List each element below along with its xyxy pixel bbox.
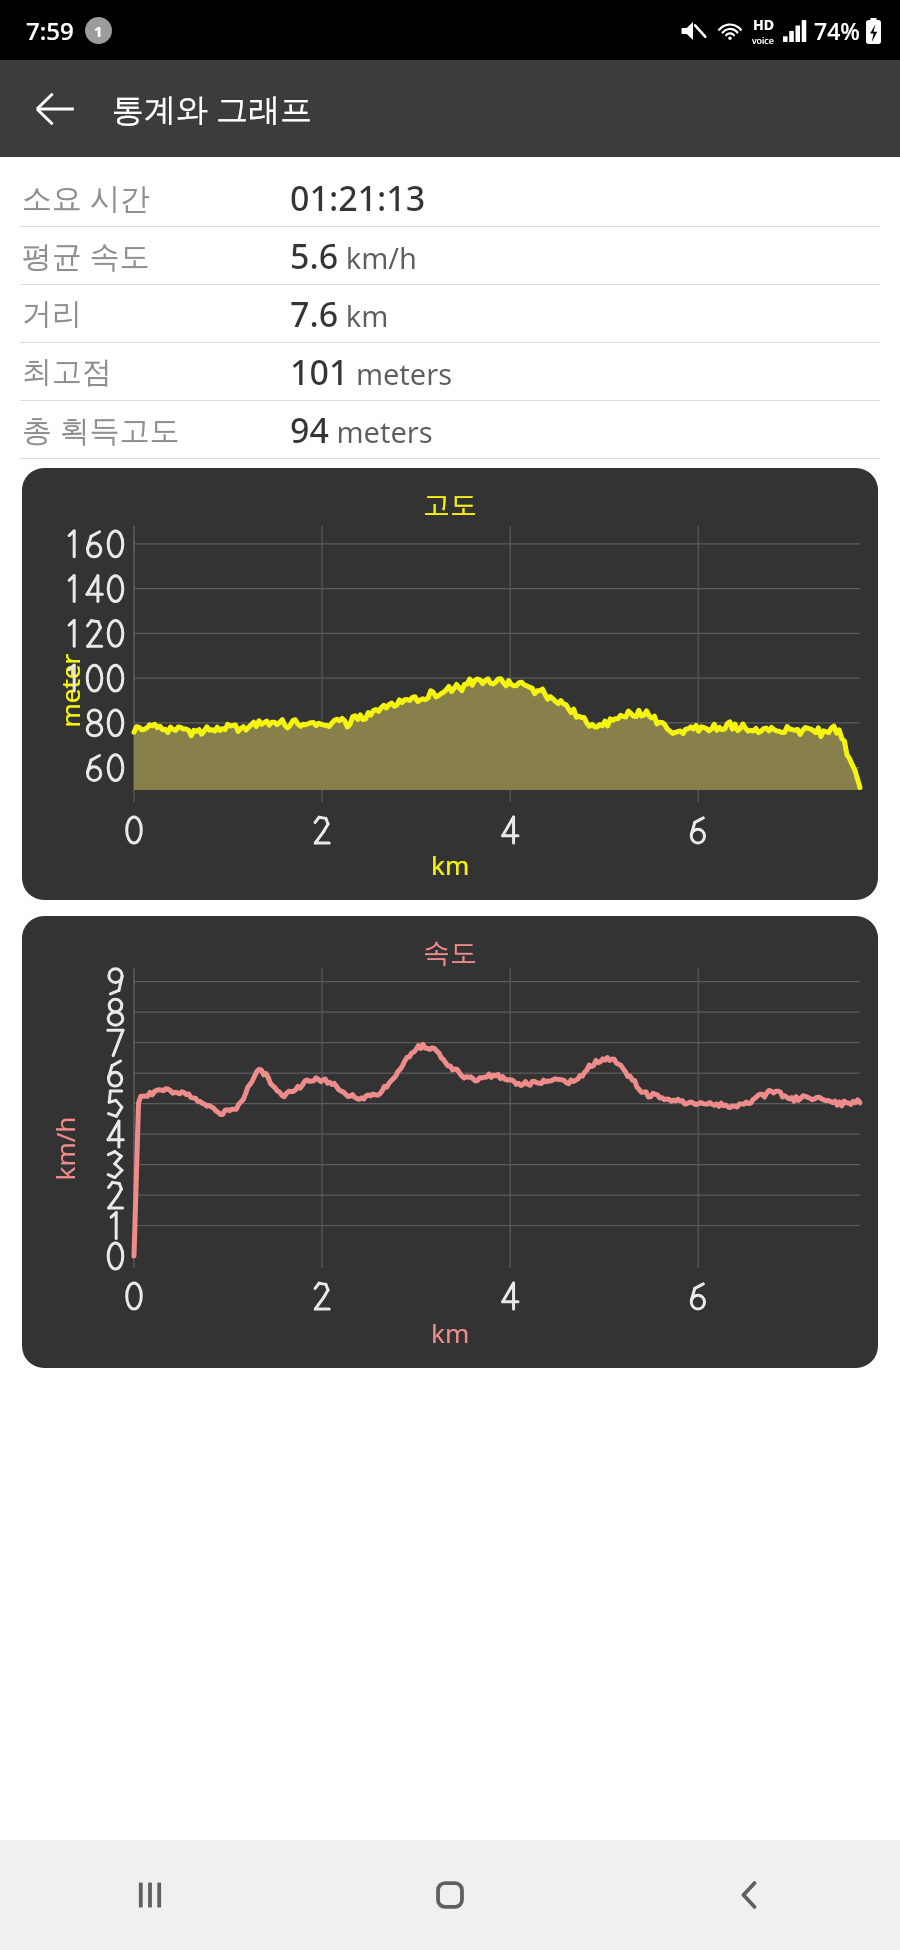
staticText: 고도 (423, 488, 477, 522)
staticText: 1 (94, 21, 103, 41)
button[interactable]: 평균 속도 (0, 227, 900, 284)
staticText: 7:59 (26, 14, 74, 47)
staticText: 101 meters (290, 349, 453, 395)
staticText: 74% (814, 15, 860, 46)
button[interactable]: Recents (0, 1840, 300, 1950)
button[interactable]: Back (600, 1840, 900, 1950)
staticText: HD (753, 15, 774, 34)
button[interactable]: Home (300, 1840, 600, 1950)
staticText: 속도 (423, 936, 477, 970)
staticText: 평균 속도 (22, 235, 150, 276)
staticText: 거리 (22, 295, 82, 333)
staticText: km/h (46, 1116, 81, 1180)
button[interactable]: Back (18, 72, 92, 146)
button[interactable]: 최고점 (0, 343, 900, 400)
staticText: 94 meters (290, 407, 433, 453)
staticText: 소요 시간 (22, 177, 150, 218)
staticText: 5.6 km/h (290, 233, 417, 279)
staticText: 01:21:13 (290, 175, 426, 221)
staticText: voice (752, 34, 774, 46)
button[interactable]: 거리 (0, 285, 900, 342)
button[interactable]: 속도 (22, 916, 878, 1368)
staticText: 최고점 (22, 353, 112, 391)
staticText: 7.6 km (290, 291, 389, 337)
staticText: 통계와 그래프 (112, 87, 313, 131)
staticText: meter (51, 653, 86, 727)
button[interactable]: 소요 시간 (0, 169, 900, 226)
staticText: km (431, 1315, 470, 1350)
button[interactable]: 총 획득고도 (0, 401, 900, 458)
staticText: km (431, 847, 470, 882)
staticText: 총 획득고도 (22, 409, 180, 450)
button[interactable]: 고도 (22, 468, 878, 900)
